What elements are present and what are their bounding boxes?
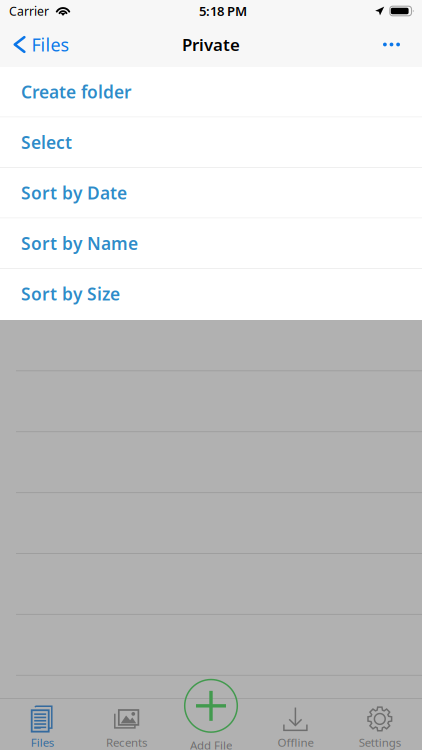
- button[interactable]: Add File: [169, 682, 253, 750]
- button[interactable]: Sort by Date: [0, 168, 422, 217]
- staticText: Sort by Name: [21, 231, 138, 255]
- button[interactable]: Files: [0, 22, 82, 67]
- button[interactable]: Recents: [84, 698, 169, 750]
- button[interactable]: Select: [0, 117, 422, 167]
- button[interactable]: More options: [361, 22, 422, 67]
- staticText: Select: [21, 130, 72, 154]
- staticText: Recents: [106, 734, 147, 750]
- button[interactable]: Sort by Size: [0, 269, 422, 318]
- staticText: 5:18 PM: [199, 2, 247, 20]
- staticText: Files: [31, 734, 54, 750]
- staticText: Carrier: [9, 3, 49, 19]
- staticText: Add File: [190, 737, 232, 750]
- staticText: Private: [182, 33, 240, 56]
- button[interactable]: Offline: [253, 698, 338, 750]
- staticText: Create folder: [21, 80, 132, 103]
- button[interactable]: Sort by Name: [0, 218, 422, 268]
- staticText: Files: [32, 32, 70, 57]
- button[interactable]: Files: [0, 698, 84, 750]
- staticText: Offline: [277, 734, 313, 750]
- staticText: Sort by Size: [21, 282, 120, 305]
- button[interactable]: Create folder: [0, 67, 422, 116]
- button[interactable]: Settings: [338, 698, 422, 750]
- staticText: Sort by Date: [21, 181, 127, 204]
- staticText: Settings: [359, 734, 401, 750]
